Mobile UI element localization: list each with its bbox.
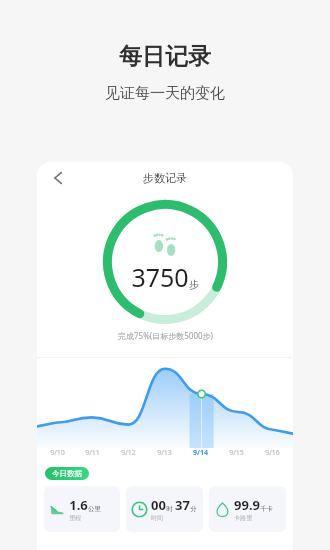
button[interactable]: 00 [126, 486, 203, 532]
button[interactable]: 1.6 [44, 486, 120, 532]
staticText: 今日数据 [52, 469, 82, 478]
button[interactable]: 今日数据 [45, 467, 89, 480]
staticText: 3750 [131, 260, 189, 294]
staticText: 9/10 [50, 448, 65, 458]
staticText: 时 [166, 505, 173, 513]
staticText: 9/13 [157, 448, 172, 458]
staticText: 37 [175, 496, 190, 514]
staticText: 9/11 [85, 448, 100, 458]
staticText: 步数记录 [143, 171, 187, 185]
staticText: 99.9 [234, 496, 260, 514]
staticText: 9/12 [121, 448, 136, 458]
staticText: 里程 [69, 514, 81, 522]
staticText: 分 [190, 505, 197, 513]
staticText: 每日记录 [119, 42, 211, 71]
staticText: 千卡 [260, 505, 273, 513]
button[interactable]: Back [46, 167, 68, 189]
staticText: 1.6 [69, 496, 88, 514]
button[interactable]: 99.9 [209, 486, 286, 532]
staticText: 卡路里 [234, 514, 252, 522]
staticText: 9/15 [229, 448, 244, 458]
staticText: 步 [189, 278, 199, 291]
staticText: 完成75%(目标步数5000步) [118, 330, 213, 341]
staticText: 9/14 [193, 448, 208, 458]
staticText: 公里 [88, 505, 101, 513]
staticText: 9/16 [265, 448, 280, 458]
staticText: 见证每一天的变化 [105, 84, 225, 103]
staticText: 00 [151, 496, 166, 514]
staticText: 时间 [151, 514, 163, 522]
